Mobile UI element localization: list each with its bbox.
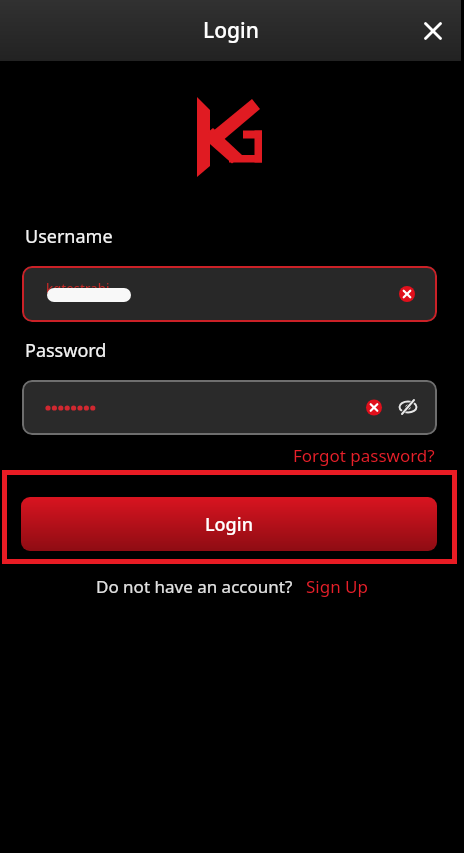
staticText: Do not have an account? (96, 575, 293, 598)
button[interactable] (419, 17, 447, 45)
staticText: Sign Up (306, 575, 368, 598)
button[interactable]: Login (21, 497, 437, 551)
staticText: Login (203, 16, 259, 45)
staticText: kgtestrahi (46, 279, 110, 297)
button[interactable]: kgtestrahi (22, 266, 437, 322)
staticText: Login (205, 512, 253, 537)
staticText: Password (25, 338, 107, 363)
staticText: Username (25, 224, 113, 249)
button[interactable]: Sign Up (306, 575, 368, 598)
staticText: Forgot password? (293, 444, 435, 467)
button[interactable]: Forgot password? (293, 444, 435, 467)
button[interactable] (22, 380, 437, 435)
